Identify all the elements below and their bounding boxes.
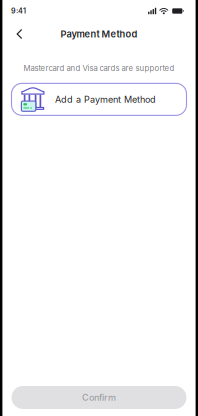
button[interactable]: Add a Payment Method <box>11 83 186 115</box>
staticText: Mastercard and Visa cards are supported <box>23 63 174 73</box>
button[interactable]: Back <box>8 22 30 46</box>
staticText: Payment Method <box>60 28 137 40</box>
staticText: Add a Payment Method <box>55 94 156 105</box>
staticText: 9:41 <box>11 7 26 15</box>
staticText: Confirm <box>82 392 116 403</box>
button[interactable]: Confirm <box>11 386 186 409</box>
